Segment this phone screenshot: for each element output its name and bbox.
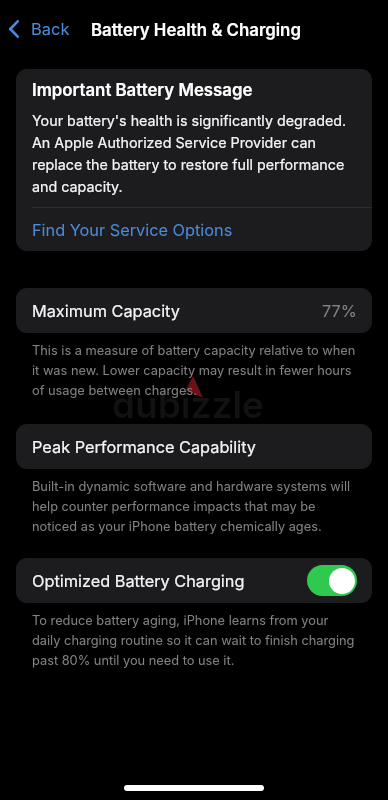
button[interactable]: Back — [0, 16, 80, 42]
staticText: Maximum Capacity — [32, 301, 180, 321]
button[interactable]: Peak Performance Capability — [16, 424, 372, 469]
staticText: Find Your Service Options — [32, 220, 233, 240]
staticText: dubizzle — [112, 382, 264, 427]
staticText: This is a measure of battery capacity re… — [32, 343, 358, 398]
button[interactable]: Find Your Service Options — [16, 208, 372, 251]
staticText: Back — [31, 19, 70, 39]
staticText: To reduce battery aging, iPhone learns f… — [32, 613, 358, 668]
staticText: Optimized Battery Charging — [32, 571, 245, 591]
button[interactable]: Maximum Capacity — [16, 288, 372, 333]
button[interactable]: Optimized Battery Charging, on — [307, 565, 357, 596]
staticText: Important Battery Message — [32, 80, 253, 100]
staticText: Peak Performance Capability — [32, 437, 257, 457]
staticText: Built-in dynamic software and hardware s… — [32, 479, 358, 534]
staticText: 77% — [322, 301, 357, 321]
staticText: Battery Health & Charging — [91, 20, 301, 40]
staticText: Your battery's health is significantly d… — [32, 112, 356, 195]
